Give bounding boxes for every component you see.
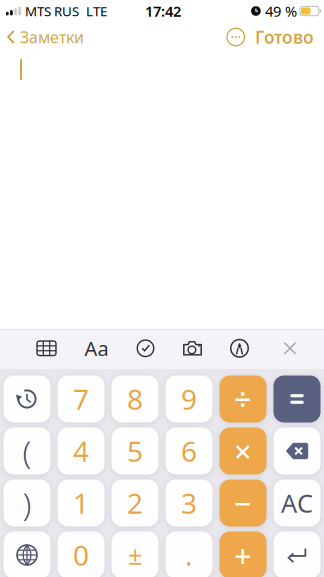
staticText: 5: [127, 432, 143, 470]
button[interactable]: =: [273, 375, 320, 422]
button[interactable]: 8: [111, 375, 158, 422]
button[interactable]: 9: [165, 375, 212, 422]
staticText: +: [234, 535, 252, 575]
button[interactable]: 2: [111, 479, 158, 526]
button[interactable]: Чек-лист: [127, 331, 163, 365]
staticText: ±: [128, 538, 142, 572]
staticText: (: [22, 430, 31, 472]
button[interactable]: История: [3, 375, 50, 422]
staticText: MTS RUS: [25, 2, 79, 20]
button[interactable]: .: [165, 531, 212, 577]
staticText: 2: [127, 484, 143, 522]
staticText: 3: [181, 484, 197, 522]
button[interactable]: Формат: [78, 331, 114, 365]
button[interactable]: +: [219, 531, 266, 577]
staticText: 4: [73, 432, 89, 470]
button[interactable]: ÷: [219, 375, 266, 422]
staticText: LTE: [86, 2, 107, 20]
staticText: 0: [73, 536, 89, 574]
button[interactable]: Готово: [244, 25, 314, 48]
staticText: Aa: [84, 335, 108, 362]
button[interactable]: Заметки: [7, 26, 84, 48]
button[interactable]: 7: [57, 375, 104, 422]
button[interactable]: 6: [165, 427, 212, 474]
button[interactable]: 0: [57, 531, 104, 577]
button[interactable]: Ввод: [273, 531, 320, 577]
staticText: −: [234, 483, 252, 523]
staticText: Готово: [255, 25, 314, 48]
button[interactable]: −: [219, 479, 266, 526]
staticText: 1: [73, 484, 89, 522]
staticText: AC: [281, 486, 313, 520]
button[interactable]: Закрыть: [275, 331, 305, 365]
staticText: 17:42: [145, 1, 181, 21]
button[interactable]: Ещё: [227, 28, 244, 46]
button[interactable]: 4: [57, 427, 104, 474]
staticText: .: [185, 536, 193, 574]
button[interactable]: AC: [273, 479, 320, 526]
button[interactable]: ±: [111, 531, 158, 577]
button[interactable]: Камера: [174, 331, 210, 365]
staticText: 49 %: [265, 1, 297, 21]
staticText: Заметки: [20, 26, 84, 48]
staticText: 7: [73, 380, 89, 418]
button[interactable]: Удалить: [273, 427, 320, 474]
button[interactable]: 5: [111, 427, 158, 474]
button[interactable]: (: [3, 427, 50, 474]
button[interactable]: Таблица: [28, 331, 64, 365]
staticText: ÷: [234, 379, 252, 419]
staticText: 6: [181, 432, 197, 470]
staticText: 8: [127, 380, 143, 418]
button[interactable]: ×: [219, 427, 266, 474]
staticText: ×: [234, 431, 252, 471]
button[interactable]: Рисовать: [221, 331, 257, 365]
button[interactable]: Сменить клавиатуру: [3, 531, 50, 577]
staticText: ): [22, 482, 31, 524]
staticText: 9: [181, 380, 197, 418]
button[interactable]: ): [3, 479, 50, 526]
button[interactable]: 1: [57, 479, 104, 526]
button[interactable]: 3: [165, 479, 212, 526]
